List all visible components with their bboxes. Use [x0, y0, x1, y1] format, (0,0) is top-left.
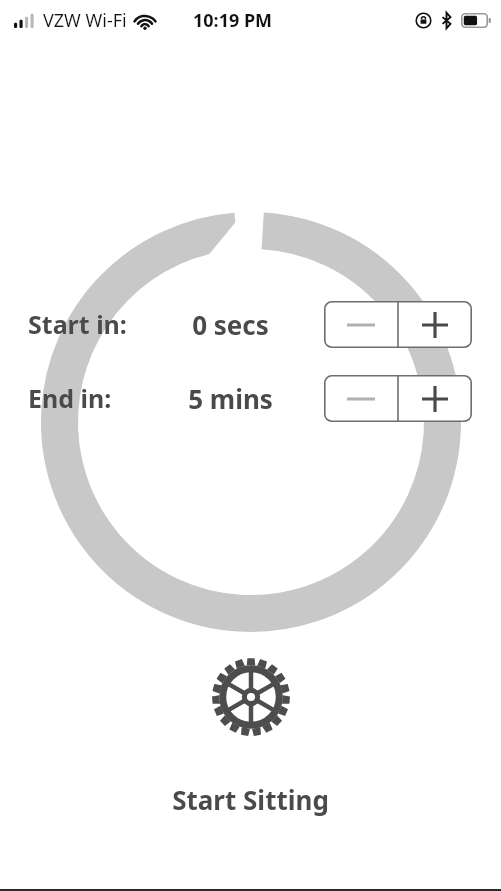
button[interactable]: Increase End in:: [398, 375, 472, 422]
button[interactable]: Start Sitting: [0, 775, 501, 823]
staticText: VZW Wi-Fi: [43, 8, 127, 33]
button[interactable]: Decrease End in:: [324, 375, 398, 422]
button[interactable]: Decrease Start in:: [324, 301, 398, 348]
staticText: 0 secs: [192, 307, 269, 342]
button[interactable]: Increase Start in:: [398, 301, 472, 348]
staticText: Start Sitting: [172, 782, 329, 817]
staticText: End in:: [28, 381, 112, 415]
staticText: 10:19 PM: [193, 8, 273, 33]
staticText: 5 mins: [188, 381, 273, 416]
staticText: Start in:: [28, 307, 127, 341]
button[interactable]: Settings: [208, 654, 294, 740]
